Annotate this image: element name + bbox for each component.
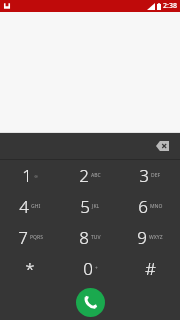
- staticText: TUV: [91, 234, 101, 241]
- staticText: ABC: [91, 172, 101, 179]
- button[interactable]: #: [120, 253, 180, 284]
- button[interactable]: 1: [0, 160, 60, 191]
- button[interactable]: *: [0, 253, 60, 284]
- button[interactable]: 4: [0, 191, 60, 222]
- staticText: JKL: [92, 203, 100, 210]
- staticText: PQRS: [30, 234, 43, 241]
- staticText: 3: [139, 164, 149, 187]
- button[interactable]: 6: [120, 191, 180, 222]
- staticText: MNO: [150, 203, 163, 210]
- staticText: 8: [79, 226, 89, 249]
- staticText: *: [25, 257, 35, 280]
- staticText: ∞: [34, 173, 39, 179]
- staticText: WXYZ: [149, 234, 163, 241]
- staticText: 4: [19, 195, 29, 218]
- staticText: 6: [138, 195, 148, 218]
- button[interactable]: 7: [0, 222, 60, 253]
- staticText: 0: [83, 257, 93, 280]
- button[interactable]: 3: [120, 160, 180, 191]
- button[interactable]: 9: [120, 222, 180, 253]
- staticText: 2:38: [163, 1, 177, 11]
- button[interactable]: 0: [60, 253, 120, 284]
- staticText: 2: [79, 164, 89, 187]
- button[interactable]: Backspace: [152, 137, 172, 155]
- staticText: DEF: [151, 172, 161, 179]
- button[interactable]: 8: [60, 222, 120, 253]
- staticText: 9: [137, 226, 147, 249]
- staticText: 7: [18, 226, 28, 249]
- button[interactable]: Call: [76, 288, 105, 317]
- staticText: 1: [22, 164, 32, 187]
- staticText: GHI: [31, 203, 41, 210]
- staticText: 5: [80, 195, 90, 218]
- button[interactable]: 2: [60, 160, 120, 191]
- staticText: +: [95, 265, 98, 272]
- button[interactable]: 5: [60, 191, 120, 222]
- staticText: #: [145, 257, 156, 280]
